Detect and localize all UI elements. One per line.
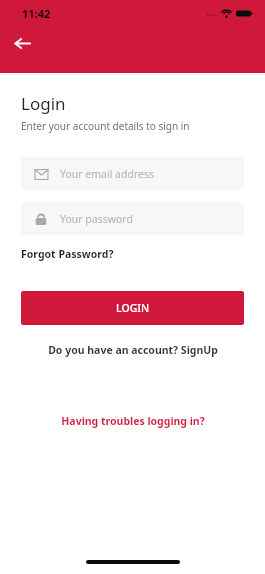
button[interactable]: Do you have an account? SignUp [21, 343, 244, 357]
staticText: 11:42 [22, 6, 51, 21]
staticText: Do you have an account? SignUp [48, 343, 218, 357]
button[interactable]: Forgot Password? [21, 245, 114, 263]
button[interactable]: Your email address [21, 157, 244, 190]
staticText: Forgot Password? [21, 247, 114, 261]
button[interactable]: Having troubles logging in? [21, 414, 244, 428]
staticText: Having troubles logging in? [61, 414, 205, 428]
button[interactable]: Back [6, 27, 38, 59]
button[interactable]: Your password [21, 202, 244, 235]
staticText: LOGIN [116, 301, 150, 315]
staticText: Login [21, 92, 66, 115]
button[interactable]: LOGIN [21, 291, 244, 325]
staticText: Your email address [60, 167, 155, 181]
staticText: Enter your account details to sign in [21, 119, 190, 133]
staticText: Your password [60, 212, 133, 226]
